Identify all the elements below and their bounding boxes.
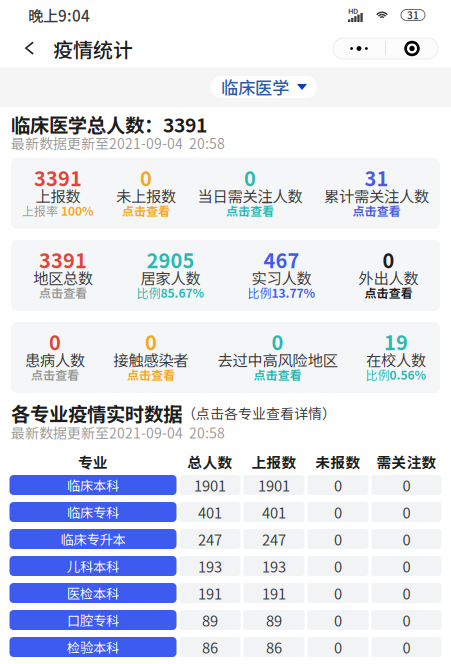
staticText: 89 [266,609,282,631]
button[interactable]: More [333,38,385,59]
button[interactable]: Close [386,38,438,59]
staticText: 193 [262,555,286,577]
staticText: 医检本科 [67,583,119,603]
staticText: 89 [202,609,218,631]
staticText: 去过中高风险地区 [217,348,337,371]
button[interactable]: 0 [105,158,187,229]
button[interactable]: 31 [313,158,440,229]
staticText: 各专业疫情实时数据 [11,399,182,427]
button[interactable]: 临床专升本 [9,529,441,549]
staticText: 85.67% [160,284,204,301]
staticText: 点击查看 [352,202,400,219]
button[interactable]: 检验本科 [9,637,441,657]
staticText: 0 [334,636,342,658]
staticText: 点击查看 [31,366,79,383]
staticText: 2905 [146,245,194,274]
staticText: 247 [198,528,222,550]
staticText: 点击查看 [364,284,412,301]
staticText: 专业 [78,451,108,472]
staticText: 实习人数 [251,266,311,289]
staticText: 0 [140,163,152,192]
staticText: 比例 [365,366,389,383]
staticText: 比例 [136,284,160,301]
button[interactable]: 3391 [11,240,115,311]
staticText: 接触感染者 [113,348,188,371]
staticText: 点击查看 [39,284,87,301]
staticText: 0 [334,609,342,631]
staticText: 点击查看 [127,366,175,383]
staticText: 上报数 [35,184,80,207]
staticText: 1901 [194,474,226,496]
button[interactable]: 0 [337,240,440,311]
button[interactable]: Back [14,30,44,67]
staticText: 临床医学总人数：3391 [11,110,207,138]
staticText: 0 [402,636,410,658]
staticText: 13.77% [271,284,315,301]
staticText: 当日需关注人数 [197,184,302,207]
button[interactable]: 0 [99,322,203,393]
button[interactable]: 0 [187,158,313,229]
staticText: 总人数 [187,451,232,472]
button[interactable]: 467 [226,240,337,311]
button[interactable]: 临床专科 [9,502,441,522]
button[interactable]: 儿科本科 [9,556,441,576]
button[interactable]: 医检本科 [9,583,441,603]
button[interactable]: 3391 [11,158,105,229]
staticText: 0 [271,327,283,356]
staticText: 外出人数 [358,266,418,289]
staticText: 居家人数 [140,266,200,289]
staticText: 点击查看 [226,202,274,219]
staticText: 0 [334,501,342,523]
button[interactable]: 0 [11,322,99,393]
staticText: 口腔专科 [67,610,119,630]
staticText: 临床医学 [221,74,289,100]
staticText: 31 [364,163,388,192]
button[interactable]: 口腔专科 [9,610,441,630]
button[interactable]: 临床医学 [211,76,317,98]
staticText: 检验本科 [67,637,119,657]
button[interactable]: 2905 [115,240,226,311]
staticText: 193 [198,555,222,577]
staticText: 累计需关注人数 [324,184,429,207]
staticText: 患病人数 [25,348,85,371]
staticText: 3391 [34,163,82,192]
staticText: 0 [334,555,342,577]
staticText: 未上报数 [116,184,176,207]
staticText: 0 [334,582,342,604]
button[interactable]: 临床本科 [9,475,441,495]
staticText: 0 [334,474,342,496]
staticText: 点击查看 [122,202,170,219]
staticText: 0 [402,501,410,523]
staticText: 191 [198,582,222,604]
staticText: 401 [262,501,286,523]
staticText: 0 [145,327,157,356]
staticText: 0 [402,555,410,577]
staticText: HD [348,5,358,16]
staticText: 1901 [258,474,290,496]
staticText: 86 [266,636,282,658]
staticText: 比例 [247,284,271,301]
staticText: 31 [407,8,419,22]
staticText: 疫情统计 [53,34,133,63]
button[interactable]: 0 [203,322,352,393]
staticText: （点击各专业查看详情） [182,403,336,423]
staticText: 未报数 [315,451,360,472]
staticText: 点击查看 [253,366,301,383]
staticText: 地区总数 [33,266,93,289]
staticText: 上报率 [22,202,61,219]
staticText: 儿科本科 [67,556,119,576]
staticText: 0.56% [389,366,426,383]
staticText: 3391 [39,245,87,274]
staticText: 上报数 [251,451,296,472]
staticText: 100% [61,202,94,219]
staticText: 最新数据更新至2021-09-04 20:58 [11,422,225,443]
staticText: 0 [402,582,410,604]
staticText: 86 [202,636,218,658]
staticText: 临床专科 [67,502,119,522]
staticText: 247 [262,528,286,550]
button[interactable]: 19 [352,322,440,393]
